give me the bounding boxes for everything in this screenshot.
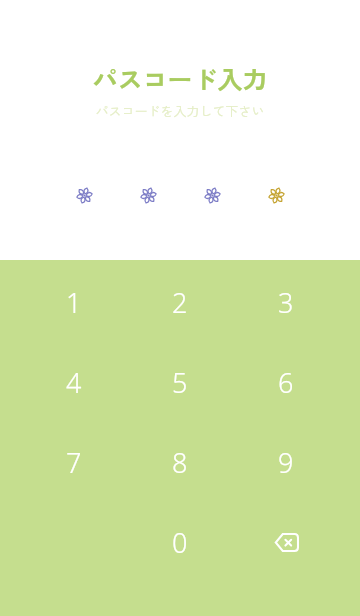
button[interactable]: 7 xyxy=(21,422,127,502)
staticText: 9 xyxy=(278,444,294,481)
staticText: 4 xyxy=(66,364,82,401)
button[interactable]: Delete xyxy=(233,502,339,582)
button[interactable]: 6 xyxy=(233,342,339,422)
staticText: 3 xyxy=(278,284,294,321)
staticText: 6 xyxy=(278,364,294,401)
button[interactable]: 9 xyxy=(233,422,339,502)
staticText: 1 xyxy=(66,284,82,321)
staticText: 7 xyxy=(66,444,82,481)
staticText: 0 xyxy=(172,524,188,561)
staticText: 2 xyxy=(172,284,188,321)
button[interactable]: 0 xyxy=(127,502,233,582)
staticText: 8 xyxy=(172,444,188,481)
button[interactable]: 2 xyxy=(127,262,233,342)
button[interactable]: 1 xyxy=(21,262,127,342)
button[interactable]: 4 xyxy=(21,342,127,422)
staticText: パスコード入力 xyxy=(92,60,268,96)
staticText: パスコードを入力して下さい xyxy=(95,101,265,120)
button[interactable]: 5 xyxy=(127,342,233,422)
staticText: 5 xyxy=(172,364,188,401)
button[interactable]: 8 xyxy=(127,422,233,502)
button[interactable]: 3 xyxy=(233,262,339,342)
